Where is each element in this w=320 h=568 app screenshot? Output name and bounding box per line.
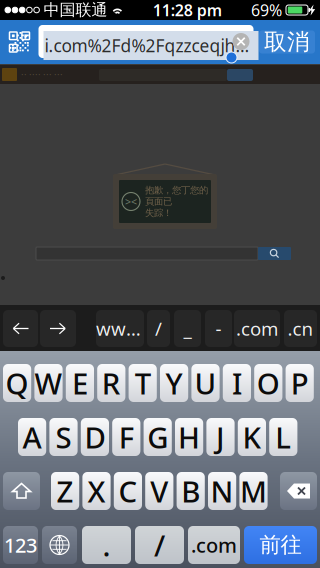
- button[interactable]: Scan QR code: [4, 20, 34, 64]
- staticText: V: [150, 471, 168, 510]
- button[interactable]: R: [97, 364, 125, 402]
- button[interactable]: Next keyboard: [42, 526, 77, 564]
- staticText: 抱歉，您丁您的頁面已 失踪！: [145, 184, 208, 219]
- staticText: /: [154, 525, 165, 564]
- staticText: T: [135, 363, 151, 402]
- staticText: W: [34, 363, 62, 402]
- button[interactable]: I: [223, 364, 251, 402]
- staticText: Q: [6, 363, 29, 402]
- button[interactable]: .com: [234, 310, 280, 347]
- button[interactable]: Y: [160, 364, 188, 402]
- staticText: M: [240, 471, 267, 510]
- button[interactable]: W: [34, 364, 63, 402]
- button[interactable]: /: [135, 526, 184, 564]
- staticText: E: [72, 363, 88, 402]
- staticText: F: [119, 417, 134, 456]
- staticText: R: [102, 363, 121, 402]
- button[interactable]: .cn: [284, 310, 317, 347]
- staticText: .cn: [287, 316, 313, 341]
- staticText: www.: [96, 316, 144, 341]
- staticText: i.com%2Fd%2Fqzzceqjhezla: [44, 34, 257, 57]
- button[interactable]: F: [112, 418, 140, 456]
- button[interactable]: Previous field: [3, 310, 38, 347]
- button[interactable]: www.: [96, 310, 144, 347]
- staticText: L: [275, 417, 291, 456]
- staticText: 前往: [259, 532, 301, 558]
- button[interactable]: E: [66, 364, 94, 402]
- button[interactable]: G: [144, 418, 172, 456]
- button[interactable]: T: [129, 364, 157, 402]
- staticText: C: [118, 471, 137, 510]
- button[interactable]: _: [174, 310, 201, 347]
- staticText: 69%: [251, 0, 282, 21]
- staticText: 123: [4, 532, 37, 558]
- button[interactable]: M: [239, 472, 268, 510]
- button[interactable]: Delete: [280, 472, 317, 510]
- staticText: J: [216, 417, 225, 456]
- button[interactable]: D: [81, 418, 109, 456]
- staticText: .com: [236, 316, 278, 341]
- button[interactable]: K: [238, 418, 266, 456]
- button[interactable]: V: [145, 472, 173, 510]
- button[interactable]: .: [82, 526, 131, 564]
- staticText: ><: [125, 194, 137, 209]
- staticText: ·· ···· ··· ···: [21, 68, 63, 81]
- button[interactable]: A: [18, 418, 46, 456]
- staticText: B: [181, 471, 200, 510]
- staticText: /: [155, 316, 162, 341]
- button[interactable]: U: [191, 364, 220, 402]
- staticText: .com: [191, 532, 237, 558]
- staticText: X: [87, 471, 105, 510]
- button[interactable]: Next field: [40, 310, 76, 347]
- button[interactable]: C: [114, 472, 142, 510]
- button[interactable]: Shift: [3, 472, 40, 510]
- staticText: 中国联通: [43, 0, 107, 20]
- staticText: .: [102, 525, 110, 564]
- button[interactable]: .com: [188, 526, 240, 564]
- button[interactable]: O: [254, 364, 282, 402]
- staticText: D: [84, 417, 105, 456]
- staticText: N: [211, 471, 234, 510]
- button[interactable]: 123: [3, 526, 38, 564]
- button[interactable]: B: [177, 472, 205, 510]
- button[interactable]: Q: [3, 364, 31, 402]
- staticText: I: [232, 363, 242, 402]
- button[interactable]: 前往: [244, 526, 317, 564]
- staticText: Y: [166, 363, 183, 402]
- button[interactable]: Z: [51, 472, 79, 510]
- staticText: U: [194, 363, 216, 402]
- staticText: Z: [57, 471, 74, 510]
- staticText: S: [55, 417, 71, 456]
- staticText: P: [291, 363, 309, 402]
- button[interactable]: L: [269, 418, 297, 456]
- button[interactable]: S: [49, 418, 78, 456]
- button[interactable]: /: [147, 310, 170, 347]
- button[interactable]: -: [205, 310, 232, 347]
- staticText: K: [242, 417, 261, 456]
- staticText: G: [147, 417, 168, 456]
- button[interactable]: Clear text: [229, 25, 253, 58]
- staticText: O: [257, 363, 280, 402]
- button[interactable]: X: [82, 472, 111, 510]
- button[interactable]: N: [208, 472, 236, 510]
- button[interactable]: 取消: [259, 20, 315, 64]
- button[interactable]: J: [206, 418, 235, 456]
- staticText: _: [183, 316, 191, 341]
- staticText: 11:28 pm: [153, 0, 222, 21]
- button[interactable]: H: [175, 418, 203, 456]
- staticText: -: [215, 316, 221, 341]
- staticText: 取消: [264, 28, 310, 56]
- staticText: A: [23, 417, 42, 456]
- button[interactable]: P: [286, 364, 314, 402]
- staticText: H: [178, 417, 200, 456]
